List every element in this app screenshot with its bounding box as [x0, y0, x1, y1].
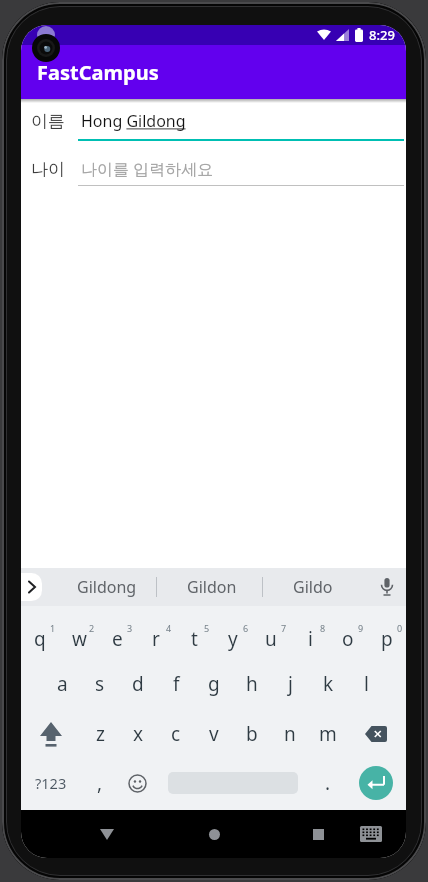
staticText: j	[288, 671, 293, 697]
staticText: m	[319, 721, 337, 747]
staticText: b	[246, 721, 258, 747]
staticText: w	[72, 626, 87, 652]
staticText: 8	[320, 622, 326, 634]
staticText: 2	[89, 622, 95, 634]
staticText: c	[171, 721, 181, 747]
staticText: n	[284, 721, 296, 747]
button[interactable]: x	[121, 714, 155, 754]
button[interactable]: r	[139, 619, 173, 659]
staticText: z	[96, 721, 105, 747]
button[interactable]	[194, 814, 234, 854]
button[interactable]: l	[349, 664, 383, 704]
staticText: t	[191, 626, 198, 652]
button[interactable]: v	[197, 714, 231, 754]
staticText: o	[342, 626, 354, 652]
button[interactable]: i	[293, 619, 327, 659]
button[interactable]	[21, 573, 42, 601]
button[interactable]: e	[100, 619, 134, 659]
staticText: u	[265, 626, 277, 652]
button[interactable]: c	[159, 714, 193, 754]
staticText: r	[152, 626, 160, 652]
button[interactable]: Hong Gildong	[81, 107, 401, 135]
button[interactable]: o	[331, 619, 365, 659]
staticText: 3	[127, 622, 133, 634]
staticText: v	[209, 721, 219, 747]
button[interactable]: k	[311, 664, 345, 704]
staticText: Hong Gildong	[81, 110, 186, 132]
staticText: 이름	[31, 111, 65, 132]
button[interactable]	[357, 718, 395, 750]
staticText: FastCampus	[37, 59, 159, 86]
staticText: p	[381, 626, 393, 652]
staticText: h	[246, 671, 258, 697]
staticText: g	[208, 671, 220, 697]
staticText: 0	[397, 622, 403, 634]
button[interactable]: ,	[83, 763, 117, 803]
staticText: 8:29	[369, 26, 395, 44]
button[interactable]: FastCampus	[21, 45, 406, 99]
staticText: 나이를 입력하세요	[81, 158, 214, 180]
staticText: x	[133, 721, 144, 747]
button[interactable]: a	[45, 664, 79, 704]
staticText: 7	[281, 622, 287, 634]
button[interactable]: Gildong	[59, 568, 155, 606]
button[interactable]	[32, 718, 70, 750]
button[interactable]: p	[370, 619, 404, 659]
button[interactable]: w	[62, 619, 96, 659]
button[interactable]: d	[121, 664, 155, 704]
staticText: Gildong	[77, 576, 137, 598]
button[interactable]: f	[159, 664, 193, 704]
button[interactable]: m	[311, 714, 345, 754]
staticText: a	[57, 671, 68, 697]
button[interactable]	[298, 814, 338, 854]
button[interactable]	[359, 766, 393, 800]
staticText: 9	[358, 622, 364, 634]
button[interactable]: h	[235, 664, 269, 704]
staticText: d	[132, 671, 144, 697]
staticText: Gildo	[293, 576, 333, 598]
button[interactable]: t	[177, 619, 211, 659]
button[interactable]: q	[23, 619, 57, 659]
staticText: .	[325, 770, 331, 796]
button[interactable]: b	[235, 714, 269, 754]
button[interactable]: .	[311, 763, 345, 803]
staticText: 1	[50, 622, 56, 634]
staticText: y	[228, 626, 238, 652]
staticText: 4	[166, 622, 172, 634]
button[interactable]	[87, 814, 127, 854]
button[interactable]	[121, 767, 153, 799]
button[interactable]: Gildon	[164, 568, 260, 606]
button[interactable]: u	[254, 619, 288, 659]
button[interactable]: s	[83, 664, 117, 704]
button[interactable]: g	[197, 664, 231, 704]
staticText: e	[112, 626, 123, 652]
staticText: 5	[204, 622, 210, 634]
staticText: 나이	[31, 159, 65, 180]
staticText: i	[308, 626, 313, 652]
staticText: f	[173, 671, 180, 697]
button[interactable]	[351, 814, 391, 854]
button[interactable]: 나이를 입력하세요	[81, 155, 401, 183]
staticText: s	[95, 671, 105, 697]
button[interactable]: z	[83, 714, 117, 754]
button[interactable]: j	[273, 664, 307, 704]
staticText: l	[364, 671, 369, 697]
staticText: k	[323, 671, 334, 697]
button[interactable]: y	[216, 619, 250, 659]
staticText: ,	[97, 770, 103, 796]
staticText: ?123	[35, 773, 67, 793]
button[interactable]: ?123	[27, 767, 75, 799]
staticText: 6	[243, 622, 249, 634]
button[interactable]: Gildo	[265, 568, 361, 606]
staticText: Gildon	[187, 576, 237, 598]
staticText: q	[34, 626, 46, 652]
button[interactable]: n	[273, 714, 307, 754]
